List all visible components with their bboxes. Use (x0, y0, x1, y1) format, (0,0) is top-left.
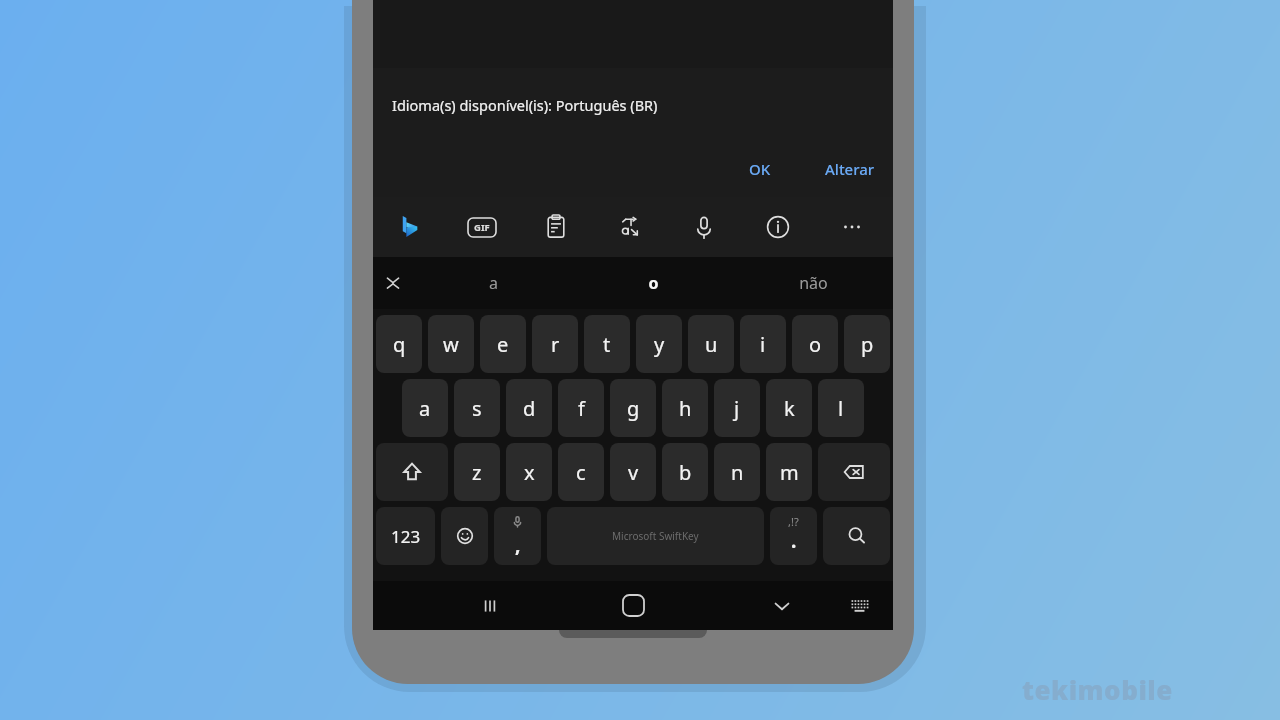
button[interactable]: Recents (461, 581, 519, 630)
staticText: q (393, 331, 406, 358)
button[interactable]: Translate (593, 197, 667, 257)
staticText: GIF (474, 221, 490, 234)
button[interactable]: Info (741, 197, 815, 257)
staticText: e (497, 331, 509, 358)
staticText: x (524, 459, 535, 486)
staticText: t (603, 331, 611, 358)
button[interactable]: d (506, 379, 552, 437)
button[interactable]: o (792, 315, 838, 373)
staticText: i (760, 331, 766, 358)
staticText: h (679, 395, 692, 422)
button[interactable]: a (402, 379, 448, 437)
staticText: p (861, 331, 874, 358)
button[interactable]: g (610, 379, 656, 437)
button[interactable]: Voice input (667, 197, 741, 257)
staticText: . (791, 528, 797, 554)
staticText: f (578, 395, 585, 422)
staticText: s (472, 395, 482, 422)
button[interactable]: i (740, 315, 786, 373)
button[interactable]: 123 (376, 507, 435, 565)
staticText: j (734, 395, 740, 422)
staticText: não (799, 272, 828, 294)
button[interactable]: Alterar (815, 153, 885, 185)
staticText: n (731, 459, 744, 486)
button[interactable]: Clipboard (519, 197, 593, 257)
staticText: 123 (391, 525, 421, 548)
staticText: ,!? (788, 514, 799, 529)
staticText: , (515, 532, 521, 558)
staticText: r (551, 331, 560, 358)
button[interactable]: c (558, 443, 604, 501)
staticText: u (705, 331, 718, 358)
staticText: OK (749, 159, 771, 179)
staticText: Alterar (825, 159, 875, 179)
staticText: Idioma(s) disponível(is): Português (BR) (392, 95, 658, 115)
button[interactable]: Change keyboard (836, 581, 882, 630)
staticText: v (628, 459, 639, 486)
button[interactable]: Backspace (818, 443, 890, 501)
button[interactable]: o (573, 257, 733, 309)
staticText: z (472, 459, 482, 486)
button[interactable]: Emoji (441, 507, 488, 565)
button[interactable]: j (714, 379, 760, 437)
button[interactable]: m (766, 443, 812, 501)
staticText: tekimobile (1022, 672, 1173, 707)
staticText: k (784, 395, 795, 422)
button[interactable]: Space (547, 507, 764, 565)
button[interactable]: s (454, 379, 500, 437)
button[interactable]: w (428, 315, 474, 373)
button[interactable]: t (584, 315, 630, 373)
staticText: y (654, 331, 665, 358)
button[interactable]: Period and symbols (770, 507, 817, 565)
button[interactable]: n (714, 443, 760, 501)
staticText: o (809, 331, 822, 358)
staticText: Microsoft SwiftKey (612, 529, 699, 543)
staticText: c (576, 459, 586, 486)
button[interactable]: v (610, 443, 656, 501)
button[interactable]: k (766, 379, 812, 437)
button[interactable]: Home (604, 581, 662, 630)
staticText: a (419, 395, 431, 422)
button[interactable]: Shift (376, 443, 448, 501)
staticText: o (648, 272, 659, 294)
button[interactable]: u (688, 315, 734, 373)
button[interactable]: GIF (445, 197, 519, 257)
staticText: b (679, 459, 692, 486)
button[interactable]: x (506, 443, 552, 501)
button[interactable]: OK (739, 153, 781, 185)
button[interactable]: Hide keyboard (757, 581, 807, 630)
button[interactable]: a (413, 257, 573, 309)
staticText: l (838, 395, 844, 422)
staticText: m (780, 459, 799, 486)
staticText: a (489, 272, 498, 294)
button[interactable]: Comma and voice input (494, 507, 541, 565)
staticText: w (443, 331, 459, 358)
button[interactable]: l (818, 379, 864, 437)
button[interactable]: z (454, 443, 500, 501)
button[interactable]: Expand suggestions (373, 257, 413, 309)
button[interactable]: h (662, 379, 708, 437)
button[interactable]: Bing search (373, 197, 445, 257)
button[interactable]: f (558, 379, 604, 437)
button[interactable]: Search (823, 507, 890, 565)
button[interactable]: b (662, 443, 708, 501)
button[interactable]: y (636, 315, 682, 373)
staticText: g (627, 395, 640, 422)
button[interactable]: q (376, 315, 422, 373)
button[interactable]: e (480, 315, 526, 373)
staticText: d (523, 395, 536, 422)
button[interactable]: não (733, 257, 893, 309)
button[interactable]: p (844, 315, 890, 373)
button[interactable]: More options (815, 197, 889, 257)
button[interactable]: r (532, 315, 578, 373)
